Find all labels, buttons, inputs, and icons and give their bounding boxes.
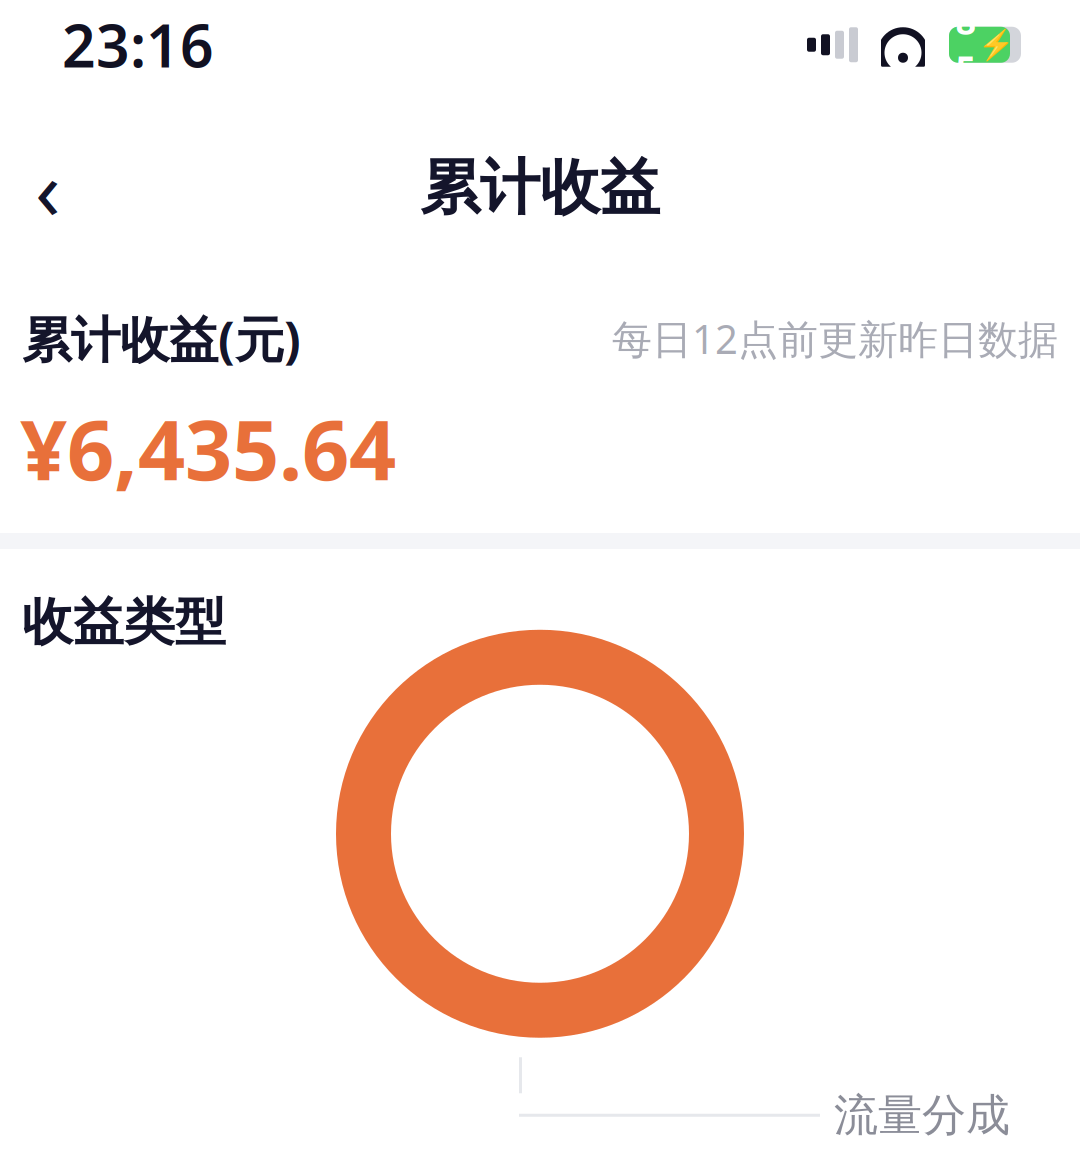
- button[interactable]: Back: [0, 140, 96, 236]
- staticText: 累计收益(元): [22, 306, 301, 371]
- staticText: 85: [955, 0, 976, 92]
- staticText: 每日12点前更新昨日数据: [612, 312, 1058, 365]
- staticText: ⚡: [977, 28, 1014, 61]
- staticText: 收益类型: [22, 591, 226, 653]
- staticText: 23:16: [62, 6, 214, 84]
- staticText: 流量分成: [834, 1088, 1010, 1142]
- staticText: ‹: [35, 133, 61, 243]
- staticText: ¥6,435.64: [20, 393, 396, 503]
- staticText: 累计收益: [420, 151, 660, 225]
